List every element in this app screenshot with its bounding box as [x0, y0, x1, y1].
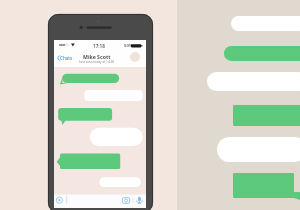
staticText: 17:18 — [93, 43, 105, 49]
button[interactable]: Chats — [57, 55, 73, 61]
staticText: 50% — [124, 43, 133, 49]
staticText: Last seen today at 14:28 — [79, 60, 115, 64]
staticText: Chats — [60, 55, 73, 61]
staticText: Mike Scott — [83, 53, 111, 60]
button[interactable]: Contact avatar — [130, 52, 140, 62]
